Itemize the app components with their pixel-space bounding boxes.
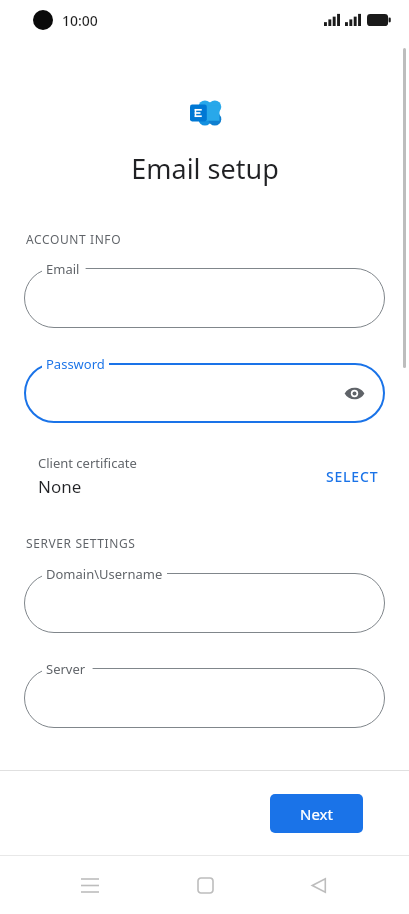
button[interactable]: Back — [295, 861, 343, 909]
button[interactable]: Server — [24, 668, 385, 728]
staticText: Email setup — [131, 150, 279, 187]
staticText: SERVER SETTINGS — [26, 535, 136, 551]
button[interactable]: Password — [24, 363, 385, 423]
staticText: SELECT — [326, 467, 379, 486]
staticText: Email — [46, 260, 80, 278]
button[interactable]: Email — [24, 268, 385, 328]
button[interactable]: Domain\Username — [24, 573, 385, 633]
button[interactable]: Home — [181, 861, 229, 909]
staticText: Next — [300, 804, 333, 824]
button[interactable]: Recent apps — [66, 861, 114, 909]
staticText: Password — [46, 355, 105, 373]
staticText: ACCOUNT INFO — [26, 231, 122, 247]
staticText: None — [38, 475, 82, 498]
button[interactable]: Client certificate — [24, 454, 385, 498]
staticText: Client certificate — [38, 454, 137, 472]
button[interactable]: SELECT — [320, 461, 385, 492]
button[interactable]: Next — [270, 794, 363, 833]
staticText: Server — [46, 660, 86, 678]
button[interactable]: Show password — [337, 376, 371, 410]
staticText: 10:00 — [62, 11, 98, 30]
staticText: Domain\Username — [46, 565, 163, 583]
